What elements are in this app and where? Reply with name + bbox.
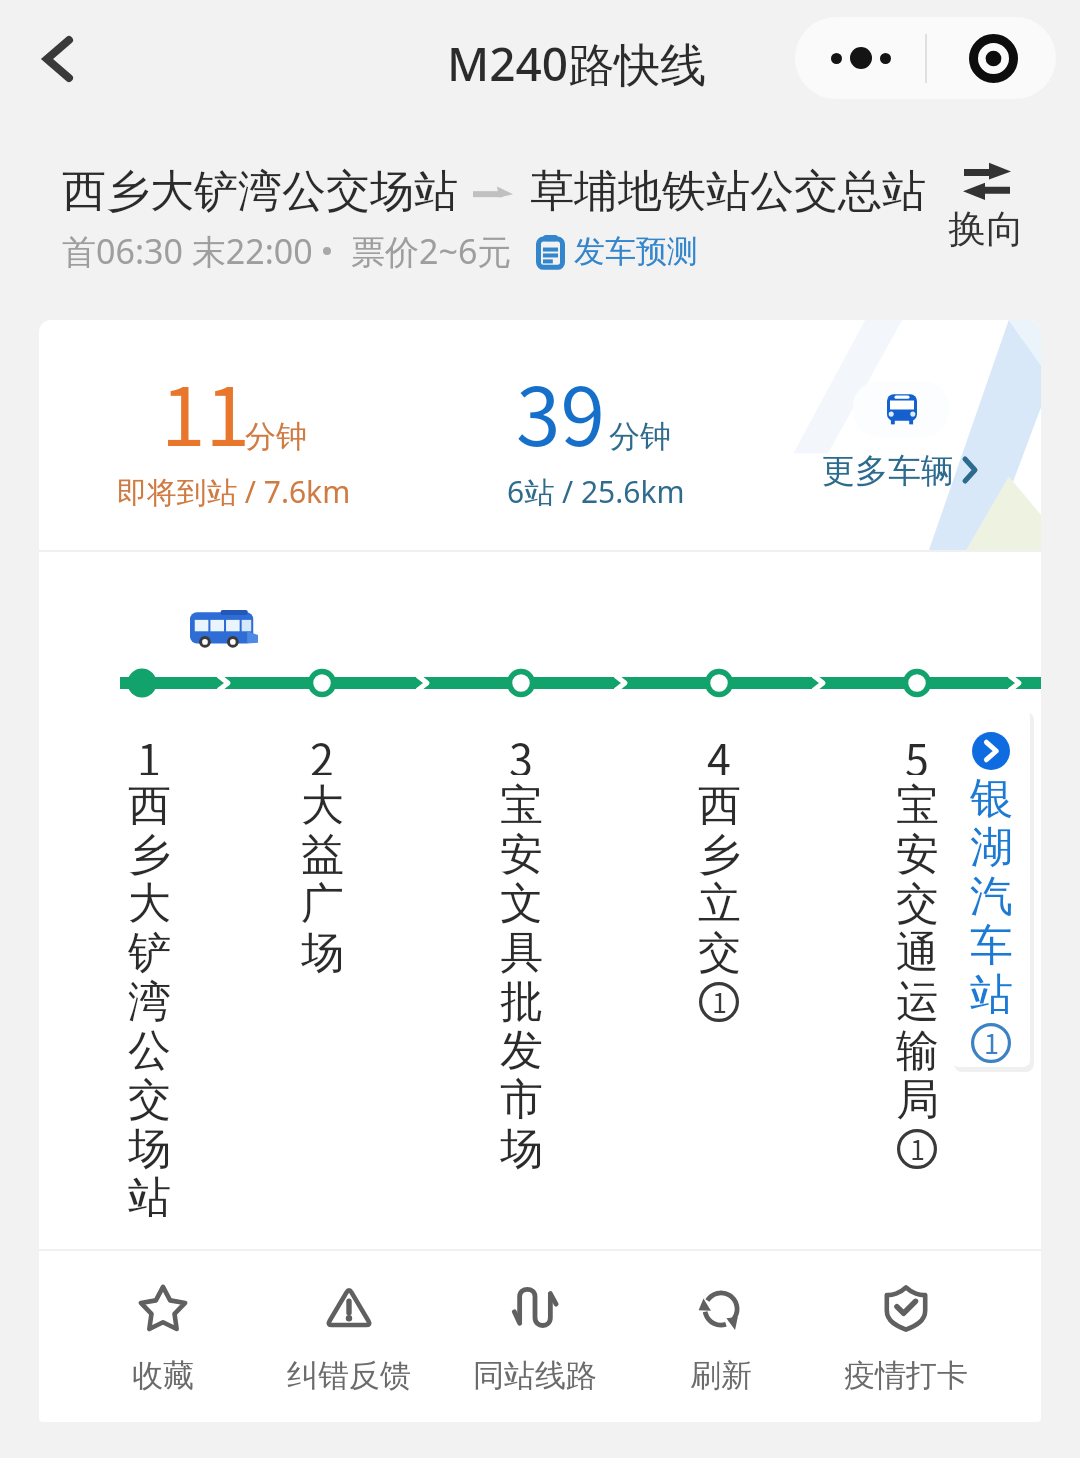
button[interactable]: 5 [872,732,962,1173]
staticText: 益 [301,828,344,877]
staticText: 1 [137,726,161,775]
staticText: 分钟 [609,417,671,456]
button[interactable]: 3 [476,732,566,1173]
staticText: 1 [910,1129,925,1168]
staticText: 公 [128,1024,171,1073]
staticText: 乡 [128,828,171,877]
staticText: 湖 [970,821,1013,870]
staticText: 草埔地铁站公交总站 [530,164,926,219]
staticText: 大 [128,877,171,926]
staticText: 西乡大铲湾公交场站 [62,164,458,219]
staticText: 首06:30 末22:00 [62,228,313,274]
staticText: 西 [698,779,741,828]
staticText: 交 [896,877,939,926]
staticText: 站 [128,1171,171,1220]
button[interactable]: 同站线路 [440,1284,630,1395]
staticText: 批 [500,975,543,1024]
staticText: 文 [500,877,543,926]
staticText: 宝 [896,779,939,828]
button[interactable]: 4 [674,732,764,1026]
staticText: 湾 [128,975,171,1024]
button[interactable]: Close mini program [927,17,1056,99]
staticText: 西 [128,779,171,828]
staticText: 汽 [970,870,1013,919]
staticText: 立 [698,877,741,926]
staticText: 39 [516,353,605,469]
staticText: 站 [970,968,1013,1017]
button[interactable]: 更多车辆 [799,380,1029,500]
staticText: 通 [896,926,939,975]
button[interactable]: More options [795,17,925,99]
staticText: 具 [500,926,543,975]
staticText: 运 [896,975,939,1024]
staticText: M240路快线 [447,32,707,95]
staticText: 11 [161,353,250,469]
staticText: 发 [500,1024,543,1073]
staticText: 银 [970,772,1013,821]
button[interactable]: 1 [104,732,194,1222]
staticText: 市 [500,1073,543,1122]
staticText: 收藏 [132,1356,194,1395]
button[interactable]: 收藏 [68,1284,258,1395]
button[interactable]: 换向 [930,152,1042,262]
staticText: 场 [128,1122,171,1171]
staticText: 交 [698,926,741,975]
button[interactable]: 疫情打卡 [811,1284,1001,1395]
staticText: 疫情打卡 [844,1356,968,1395]
staticText: 即将到站 / 7.6km [117,471,351,512]
staticText: 刷新 [690,1356,752,1395]
button[interactable]: Back [16,17,100,101]
staticText: 车 [970,919,1013,968]
staticText: 3 [509,726,533,775]
staticText: 4 [707,726,731,775]
button[interactable]: 2 [277,732,367,977]
staticText: 大 [301,779,344,828]
button[interactable]: 银 [952,709,1030,1067]
staticText: 乡 [698,828,741,877]
staticText: 发车预测 [574,232,698,271]
staticText: 6站 / 25.6km [507,471,685,512]
staticText: 纠错反馈 [287,1356,411,1395]
staticText: 铲 [128,926,171,975]
button[interactable]: 纠错反馈 [254,1284,444,1395]
staticText: 安 [500,828,543,877]
staticText: 5 [905,726,929,775]
staticText: 安 [896,828,939,877]
staticText: 广 [301,877,344,926]
staticText: 1 [984,1023,999,1062]
staticText: 票价2~6元 [351,228,512,274]
staticText: 输 [896,1024,939,1073]
staticText: 场 [500,1122,543,1171]
button[interactable]: 刷新 [626,1284,816,1395]
staticText: 局 [896,1073,939,1122]
button[interactable]: 发车预测 [536,232,698,271]
staticText: 1 [712,982,727,1021]
staticText: 换向 [930,205,1042,253]
staticText: 2 [310,726,334,775]
staticText: 宝 [500,779,543,828]
staticText: 更多车辆 [822,450,954,492]
staticText: 分钟 [245,417,307,456]
staticText: 交 [128,1073,171,1122]
staticText: 场 [301,926,344,975]
staticText: 同站线路 [473,1356,597,1395]
